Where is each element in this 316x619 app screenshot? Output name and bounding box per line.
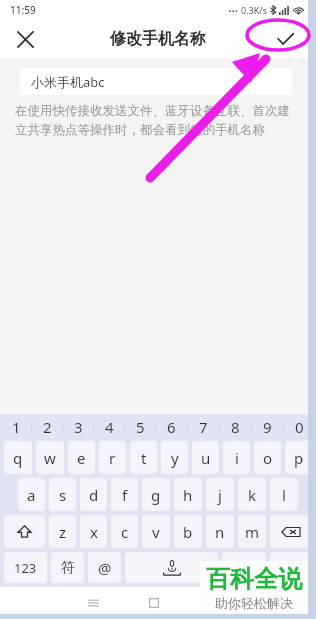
- staticText: p: [294, 448, 304, 468]
- staticText: q: [13, 448, 23, 468]
- staticText: k: [248, 485, 257, 505]
- button[interactable]: 9: [252, 414, 283, 439]
- button[interactable]: u: [192, 441, 219, 474]
- button[interactable]: t: [130, 441, 157, 474]
- staticText: 1: [12, 417, 21, 437]
- button[interactable]: 符: [51, 552, 84, 583]
- staticText: 11:59: [10, 3, 36, 17]
- staticText: 助你轻松解决: [215, 595, 293, 611]
- staticText: h: [183, 485, 193, 505]
- staticText: e: [77, 448, 86, 468]
- staticText: 9: [263, 417, 272, 437]
- staticText: x: [90, 522, 98, 542]
- staticText: 完成: [231, 560, 257, 576]
- staticText: 百科全说: [206, 564, 302, 594]
- button[interactable]: 4: [94, 414, 124, 439]
- button[interactable]: 6: [156, 414, 187, 439]
- staticText: z: [59, 522, 67, 542]
- staticText: f: [122, 485, 128, 505]
- staticText: u: [201, 448, 211, 468]
- button[interactable]: 2: [32, 414, 62, 439]
- staticText: v: [152, 522, 160, 542]
- button[interactable]: @: [88, 552, 121, 583]
- staticText: 修改手机名称: [110, 29, 206, 49]
- staticText: r: [109, 448, 116, 468]
- button[interactable]: Shift: [4, 515, 45, 548]
- button[interactable]: v: [142, 515, 170, 548]
- staticText: t: [141, 448, 147, 468]
- button[interactable]: g: [142, 478, 170, 511]
- button[interactable]: q: [4, 441, 32, 474]
- staticText: a: [27, 485, 36, 505]
- button[interactable]: h: [174, 478, 202, 511]
- staticText: i: [235, 448, 239, 468]
- staticText: c: [121, 522, 129, 542]
- staticText: 6: [167, 417, 176, 437]
- staticText: j: [218, 485, 222, 505]
- button[interactable]: Home: [139, 588, 169, 618]
- staticText: s: [59, 485, 67, 505]
- button[interactable]: Enter: [270, 552, 312, 583]
- staticText: 0: [295, 417, 304, 437]
- button[interactable]: p: [285, 441, 312, 474]
- button[interactable]: 完成: [222, 552, 266, 583]
- button[interactable]: 小米手机abc: [20, 68, 292, 95]
- button[interactable]: 8: [220, 414, 251, 439]
- button[interactable]: k: [238, 478, 266, 511]
- staticText: y: [171, 448, 179, 468]
- staticText: 3: [74, 417, 83, 437]
- button[interactable]: 7: [188, 414, 219, 439]
- button[interactable]: w: [36, 441, 64, 474]
- button[interactable]: d: [80, 478, 107, 511]
- button[interactable]: n: [206, 515, 234, 548]
- button[interactable]: a: [18, 478, 45, 511]
- button[interactable]: Confirm: [268, 22, 302, 56]
- button[interactable]: l: [270, 478, 298, 511]
- button[interactable]: e: [68, 441, 95, 474]
- staticText: 7: [199, 417, 208, 437]
- button[interactable]: o: [254, 441, 281, 474]
- staticText: 2: [43, 417, 52, 437]
- button[interactable]: z: [49, 515, 76, 548]
- button[interactable]: f: [111, 478, 138, 511]
- button[interactable]: 5: [125, 414, 155, 439]
- staticText: w: [44, 448, 56, 468]
- button[interactable]: b: [174, 515, 202, 548]
- staticText: 8: [231, 417, 240, 437]
- button[interactable]: r: [99, 441, 126, 474]
- button[interactable]: 3: [63, 414, 93, 439]
- staticText: l: [282, 485, 286, 505]
- staticText: o: [263, 448, 273, 468]
- staticText: 4: [105, 417, 114, 437]
- button[interactable]: Recent apps: [78, 588, 108, 618]
- staticText: m: [245, 522, 260, 542]
- staticText: 5: [136, 417, 145, 437]
- staticText: 符: [61, 559, 75, 577]
- button[interactable]: m: [238, 515, 266, 548]
- staticText: 在使用快传接收发送文件、蓝牙设备互联、首次建立共享热点等操作时，都会看到您的手机…: [15, 103, 298, 138]
- button[interactable]: 123: [4, 552, 47, 583]
- button[interactable]: Backspace: [270, 515, 312, 548]
- button[interactable]: Close: [8, 22, 42, 56]
- button[interactable]: i: [223, 441, 250, 474]
- staticText: b: [183, 522, 193, 542]
- staticText: d: [89, 485, 99, 505]
- button[interactable]: c: [111, 515, 138, 548]
- button[interactable]: y: [161, 441, 188, 474]
- staticText: 小米手机abc: [31, 73, 105, 91]
- staticText: 0.3K/s: [241, 4, 267, 16]
- button[interactable]: Space: [125, 552, 218, 583]
- button[interactable]: 1: [1, 414, 31, 439]
- button[interactable]: x: [80, 515, 107, 548]
- button[interactable]: j: [206, 478, 234, 511]
- button[interactable]: s: [49, 478, 76, 511]
- staticText: @: [98, 558, 112, 578]
- staticText: 123: [14, 559, 37, 577]
- staticText: g: [151, 485, 161, 505]
- staticText: n: [215, 522, 225, 542]
- button[interactable]: 0: [284, 414, 315, 439]
